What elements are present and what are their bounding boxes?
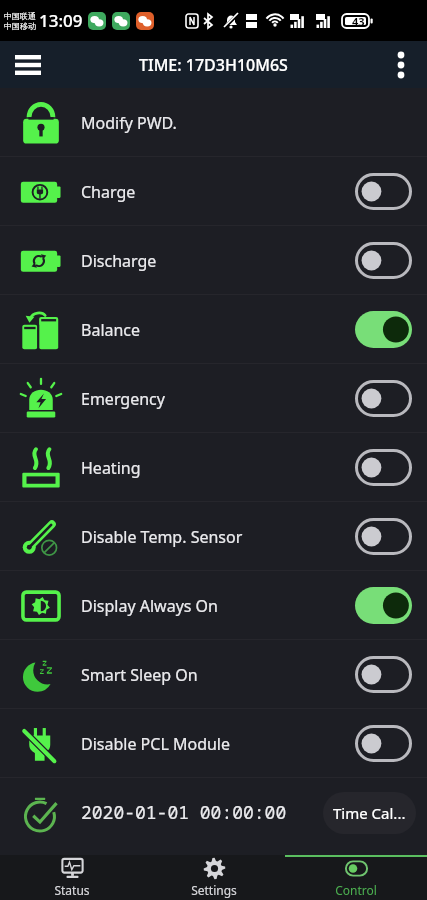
staticText: Balance <box>81 319 141 341</box>
button[interactable]: Status <box>0 855 143 900</box>
button[interactable]: Discharge <box>0 226 427 295</box>
staticText: 43 <box>352 14 365 29</box>
button[interactable]: Disabled <box>355 449 412 486</box>
staticText: Emergency <box>81 388 165 410</box>
button[interactable]: Balance <box>0 295 427 364</box>
staticText: Heating <box>81 457 141 479</box>
button[interactable]: Smart Sleep On <box>0 640 427 709</box>
staticText: Smart Sleep On <box>81 664 198 686</box>
button[interactable]: Disable Temp. Sensor <box>0 502 427 571</box>
staticText: Disable Temp. Sensor <box>81 526 243 548</box>
staticText: Disable PCL Module <box>81 733 231 755</box>
staticText: Settings <box>191 882 237 898</box>
button[interactable]: Time Cal... <box>323 792 416 834</box>
staticText: 中国联通 <box>4 11 36 21</box>
staticText: 13:09 <box>39 9 83 32</box>
staticText: Control <box>335 882 377 898</box>
button[interactable]: Disabled <box>355 518 412 555</box>
staticText: Modify PWD. <box>81 112 177 134</box>
button[interactable]: Enabled <box>355 311 412 348</box>
button[interactable]: Enabled <box>355 587 412 624</box>
staticText: 2020-01-01 00:00:00 <box>81 800 287 825</box>
button[interactable]: Settings <box>143 855 285 900</box>
staticText: Discharge <box>81 250 157 272</box>
staticText: 中国移动 <box>4 21 36 31</box>
button[interactable]: Heating <box>0 433 427 502</box>
button[interactable]: Disabled <box>355 725 412 762</box>
staticText: Status <box>54 882 90 898</box>
button[interactable]: More options <box>379 43 423 87</box>
button[interactable]: Disable PCL Module <box>0 709 427 778</box>
staticText: Display Always On <box>81 595 219 617</box>
button[interactable]: Disabled <box>355 242 412 279</box>
staticText: Time Cal... <box>333 803 406 823</box>
button[interactable]: Control <box>285 855 427 900</box>
staticText: TIME: 17D3H10M6S <box>139 54 288 76</box>
button[interactable]: Emergency <box>0 364 427 433</box>
button[interactable]: Charge <box>0 157 427 226</box>
staticText: Charge <box>81 181 136 203</box>
button[interactable]: Disabled <box>355 656 412 693</box>
button[interactable]: Modify PWD. <box>0 88 427 157</box>
button[interactable]: Display Always On <box>0 571 427 640</box>
button[interactable]: Disabled <box>355 173 412 210</box>
button[interactable]: Disabled <box>355 380 412 417</box>
button[interactable]: Menu <box>2 41 54 88</box>
